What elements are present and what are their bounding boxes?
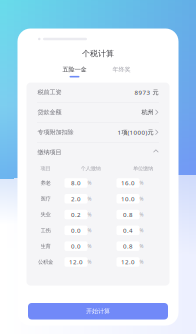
button[interactable]: 税前工资 <box>26 83 169 102</box>
button[interactable]: 12.0 <box>64 257 87 267</box>
staticText: 养老 <box>40 180 50 186</box>
staticText: 专项附加扣除 <box>37 128 73 136</box>
staticText: % <box>139 180 143 186</box>
button[interactable]: 0.2 <box>64 210 87 219</box>
button[interactable]: 五险一金 <box>51 65 98 79</box>
staticText: % <box>139 243 143 249</box>
staticText: 个人缴纳 <box>80 165 100 172</box>
button[interactable]: 贷款金额 <box>26 103 169 122</box>
button[interactable]: 10.0 <box>116 194 139 203</box>
staticText: % <box>87 211 91 218</box>
staticText: 失业 <box>40 211 50 218</box>
staticText: 个税计算 <box>82 48 114 59</box>
button[interactable]: 专项附加扣除 <box>26 123 169 142</box>
staticText: % <box>87 259 91 265</box>
staticText: 医疗 <box>40 195 50 202</box>
staticText: 年终奖 <box>112 66 130 73</box>
staticText: 8973 元 <box>134 88 158 97</box>
staticText: 0.4 <box>123 226 133 235</box>
staticText: 工伤 <box>40 227 50 234</box>
staticText: 生育 <box>40 243 50 249</box>
staticText: 缴纳项目 <box>37 148 61 156</box>
button[interactable]: 16.0 <box>116 178 139 188</box>
button[interactable]: 2.0 <box>64 194 87 203</box>
staticText: 0.0 <box>71 242 81 250</box>
staticText: % <box>87 180 91 186</box>
staticText: 单位缴纳 <box>133 165 153 172</box>
staticText: 0.8 <box>123 242 133 250</box>
staticText: 贷款金额 <box>37 108 61 116</box>
button[interactable]: 年终奖 <box>98 65 145 79</box>
staticText: 公积金 <box>38 259 53 265</box>
staticText: 杭州 <box>141 108 153 116</box>
staticText: 项目 <box>40 165 50 172</box>
staticText: 16.0 <box>121 179 135 187</box>
button[interactable]: 0.8 <box>116 241 139 251</box>
button[interactable]: 0.4 <box>116 226 139 235</box>
staticText: 2.0 <box>71 195 81 203</box>
staticText: 0.0 <box>71 226 81 235</box>
button[interactable]: 0.0 <box>64 226 87 235</box>
button[interactable]: 8.0 <box>64 178 87 188</box>
staticText: 1项(1000)元 <box>117 128 153 137</box>
staticText: % <box>139 195 143 202</box>
staticText: 8.0 <box>71 179 81 187</box>
staticText: 0.2 <box>71 210 81 219</box>
button[interactable]: 开始计算 <box>28 303 168 319</box>
staticText: % <box>139 211 143 218</box>
staticText: 12.0 <box>69 258 83 266</box>
staticText: 五险一金 <box>62 66 86 73</box>
staticText: 0.8 <box>123 210 133 219</box>
staticText: % <box>139 227 143 234</box>
staticText: % <box>87 243 91 249</box>
staticText: % <box>139 259 143 265</box>
button[interactable]: 缴纳项目 <box>26 143 169 162</box>
staticText: 税前工资 <box>37 88 61 96</box>
button[interactable]: 12.0 <box>116 257 139 267</box>
staticText: 12.0 <box>121 258 135 266</box>
button[interactable]: 0.8 <box>116 210 139 219</box>
staticText: % <box>87 227 91 234</box>
staticText: % <box>87 195 91 202</box>
staticText: 10.0 <box>121 195 135 203</box>
button[interactable]: 0.0 <box>64 241 87 251</box>
staticText: 开始计算 <box>86 307 110 315</box>
